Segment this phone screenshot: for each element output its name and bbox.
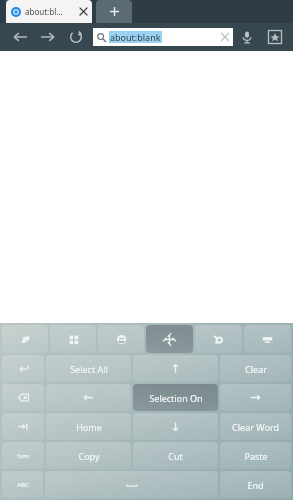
staticText: End — [247, 479, 264, 491]
button[interactable]: Reload — [62, 23, 90, 51]
staticText: Sym — [17, 452, 29, 460]
staticText: Clear Word — [232, 421, 279, 433]
button[interactable]: Handwriting — [2, 325, 48, 353]
button[interactable]: Right — [220, 384, 291, 411]
button[interactable]: Cut — [133, 442, 218, 469]
staticText: Home — [76, 421, 102, 433]
button[interactable]: Paste — [220, 442, 291, 469]
button[interactable]: about:bl… — [6, 0, 92, 23]
button[interactable]: ABC — [2, 471, 43, 498]
button[interactable]: Down — [133, 413, 218, 440]
button[interactable]: Selection On — [133, 384, 218, 411]
button[interactable]: Sym — [2, 442, 44, 469]
button[interactable]: Up — [133, 355, 218, 382]
button[interactable]: Settings — [195, 325, 242, 353]
button[interactable]: Emoji — [98, 325, 144, 353]
button[interactable]: Home — [46, 413, 131, 440]
button[interactable]: Clear Word — [220, 413, 291, 440]
button[interactable]: Forward — [34, 23, 62, 51]
button[interactable]: Clear — [221, 33, 229, 41]
button[interactable]: Keyboard layouts — [50, 325, 96, 353]
button[interactable]: New tab — [96, 0, 132, 23]
staticText: Paste — [244, 450, 268, 462]
staticText: about:blank — [110, 31, 161, 43]
button[interactable]: Move cursor — [146, 325, 193, 353]
button[interactable]: Bookmark — [261, 23, 289, 51]
button[interactable]: Left — [46, 384, 131, 411]
staticText: Cut — [168, 450, 183, 462]
button[interactable]: Space — [45, 471, 218, 498]
button[interactable]: Keyboard — [244, 325, 291, 353]
button[interactable]: Clear — [220, 355, 291, 382]
staticText: Select All — [70, 363, 108, 375]
button[interactable]: Voice search — [233, 23, 261, 51]
staticText: ABC — [17, 481, 29, 489]
button[interactable]: Copy — [46, 442, 131, 469]
button[interactable]: Back — [6, 23, 34, 51]
button[interactable]: End — [220, 471, 291, 498]
button[interactable]: about:blank — [93, 28, 233, 46]
button[interactable]: Tab — [2, 413, 44, 440]
button[interactable]: Backspace — [2, 384, 44, 411]
button[interactable]: Close tab — [80, 8, 87, 15]
button[interactable]: Enter — [2, 355, 44, 382]
staticText: Selection On — [149, 392, 203, 404]
staticText: about:bl… — [25, 6, 63, 17]
staticText: Clear — [245, 363, 267, 375]
button[interactable]: Select All — [46, 355, 131, 382]
staticText: Copy — [78, 450, 100, 462]
